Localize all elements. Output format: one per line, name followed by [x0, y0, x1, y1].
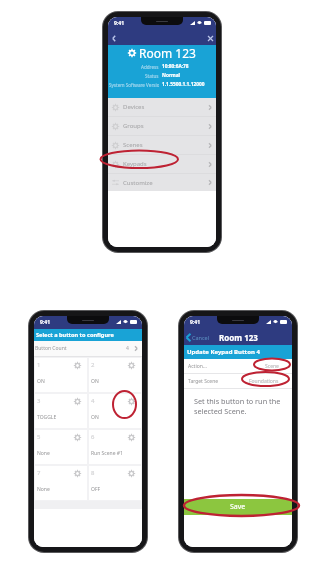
staticText: 2: [91, 361, 95, 369]
staticText: Devices: [123, 103, 145, 111]
staticText: Update Keypad Button 4: [187, 348, 260, 356]
button[interactable]: 5: [35, 430, 87, 464]
staticText: Scene: [265, 363, 279, 370]
button[interactable]: 8: [89, 466, 141, 500]
staticText: Save: [230, 502, 246, 512]
button[interactable]: 7: [35, 466, 87, 500]
button[interactable]: 1: [35, 358, 87, 392]
staticText: Cancel: [192, 334, 210, 341]
button[interactable]: Target Scene: [184, 374, 292, 388]
button[interactable]: Keypads: [108, 155, 216, 173]
staticText: 4: [126, 345, 129, 352]
button[interactable]: 6: [89, 430, 141, 464]
staticText: 10:80:6A:78: [162, 63, 189, 70]
button[interactable]: Customize: [108, 174, 216, 191]
staticText: Customize: [123, 179, 153, 187]
staticText: ON: [91, 414, 99, 421]
button[interactable]: 3: [35, 394, 87, 428]
staticText: System Software Version: [109, 82, 159, 88]
staticText: 6: [91, 433, 95, 441]
button[interactable]: Scenes: [108, 136, 216, 154]
staticText: OFF: [91, 486, 101, 493]
staticText: 7: [37, 469, 41, 477]
button[interactable]: 4: [89, 394, 141, 428]
staticText: Foundations: [249, 378, 279, 385]
button[interactable]: Cancel: [184, 333, 212, 342]
staticText: Groups: [123, 122, 144, 130]
staticText: Select a button to configure: [36, 331, 114, 339]
staticText: Normal: [162, 72, 181, 79]
staticText: Button Count: [35, 345, 67, 352]
staticText: TOGGLE: [37, 414, 57, 421]
staticText: Room 123: [219, 332, 258, 343]
staticText: ON: [91, 378, 99, 385]
staticText: selected Scene.: [194, 406, 292, 416]
staticText: Target Scene: [188, 378, 219, 385]
staticText: Keypads: [123, 160, 147, 168]
button[interactable]: Close: [204, 32, 216, 44]
staticText: None: [37, 486, 50, 493]
staticText: Address: [141, 64, 159, 70]
button[interactable]: Back: [108, 32, 120, 44]
staticText: Scenes: [123, 141, 143, 149]
staticText: Action...: [188, 363, 207, 370]
button[interactable]: Select a button to configure: [34, 329, 142, 341]
staticText: 1: [37, 361, 41, 369]
staticText: Status: [145, 73, 159, 79]
staticText: 9:41: [190, 319, 200, 326]
staticText: Run Scene #1: [91, 450, 123, 457]
staticText: 4: [91, 397, 95, 405]
staticText: 1.1.5500.1.1.12000: [162, 81, 205, 88]
staticText: 5: [37, 433, 41, 441]
staticText: Set this button to run the: [194, 396, 292, 406]
staticText: 3: [37, 397, 41, 405]
button[interactable]: Devices: [108, 98, 216, 116]
button[interactable]: 2: [89, 358, 141, 392]
staticText: 9:41: [114, 20, 124, 27]
staticText: 8: [91, 469, 95, 477]
staticText: ON: [37, 378, 45, 385]
staticText: 9:41: [40, 319, 50, 326]
staticText: Room 123: [139, 45, 196, 61]
button[interactable]: Save: [184, 499, 292, 515]
button[interactable]: Action...: [184, 359, 292, 373]
staticText: None: [37, 450, 50, 457]
button[interactable]: Groups: [108, 117, 216, 135]
